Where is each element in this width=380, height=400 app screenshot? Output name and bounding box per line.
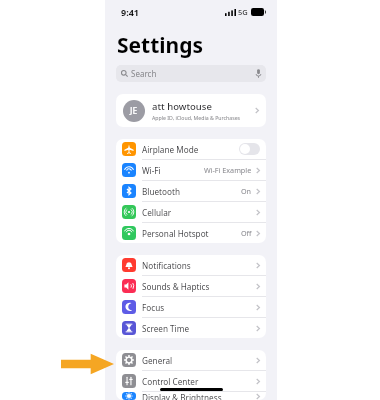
staticText: Off [241,228,252,238]
button[interactable]: Control Center [116,371,266,391]
staticText: Cellular [142,207,172,218]
staticText: 5G [238,7,248,17]
staticText: Settings [117,31,204,60]
staticText: Airplane Mode [142,144,199,155]
staticText: Search [131,68,157,79]
button[interactable]: Notifications [116,255,266,275]
button[interactable]: Sounds & Haptics [116,276,266,296]
button[interactable]: Cellular [116,202,266,222]
button[interactable]: Screen Time [116,318,266,338]
button[interactable]: Airplane Mode toggle [239,143,260,155]
staticText: JE [130,105,138,117]
staticText: Wi-Fi Example [204,165,252,175]
staticText: Personal Hotspot [142,228,209,239]
staticText: On [241,186,252,196]
staticText: Display & Brightness [142,392,222,400]
staticText: att howtouse [152,100,212,113]
staticText: Wi-Fi [142,165,161,176]
button[interactable]: JE [116,94,266,127]
staticText: Focus [142,302,165,313]
staticText: Notifications [142,260,191,271]
button[interactable]: Search [116,65,266,82]
staticText: Bluetooth [142,186,180,197]
button[interactable]: Display & Brightness [116,392,266,400]
button[interactable]: General [116,350,266,370]
button[interactable]: Airplane Mode [116,139,266,159]
staticText: General [142,355,173,366]
staticText: Screen Time [142,323,190,334]
button[interactable]: Personal Hotspot [116,223,266,243]
button[interactable]: Wi-Fi [116,160,266,180]
staticText: Sounds & Haptics [142,281,210,292]
staticText: 9:41 [121,6,139,18]
button[interactable]: Bluetooth [116,181,266,201]
staticText: Apple ID, iCloud, Media & Purchases [152,114,241,121]
button[interactable]: Focus [116,297,266,317]
button[interactable]: Pointer to Control Center [61,353,114,375]
staticText: Control Center [142,376,199,387]
